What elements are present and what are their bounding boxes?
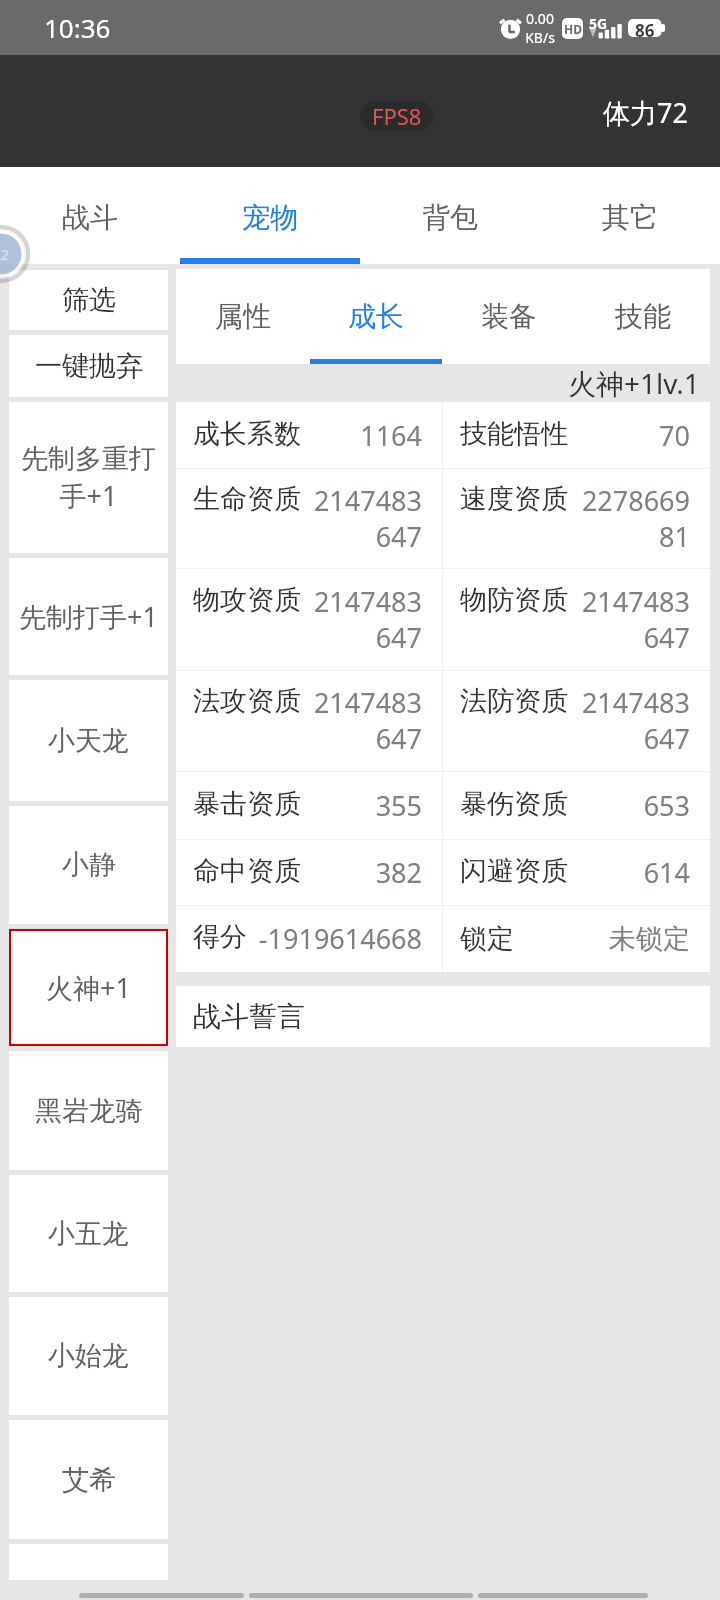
staticText: 成长 — [348, 299, 404, 334]
staticText: 小天龙 — [48, 724, 129, 758]
staticText: 成长系数 — [193, 417, 301, 451]
button[interactable]: 小静 — [9, 806, 168, 924]
staticText: 锁定 — [460, 922, 514, 956]
staticText: 装备 — [481, 299, 537, 334]
staticText: 先制多重打手+1 — [11, 442, 166, 514]
staticText: 闪避资质 — [460, 854, 568, 888]
staticText: 5G — [589, 14, 608, 33]
staticText: 86 — [635, 19, 655, 37]
button[interactable]: Back — [79, 1593, 244, 1598]
button[interactable]: 小五龙 — [9, 1175, 168, 1292]
button[interactable]: 技能 — [576, 269, 710, 364]
button[interactable]: 其它 — [540, 167, 720, 264]
staticText: 小五龙 — [48, 1217, 129, 1251]
button[interactable]: 背包 — [360, 167, 540, 264]
staticText: 技能 — [615, 299, 671, 334]
button[interactable]: 宠物 — [180, 167, 360, 264]
staticText: 2147483647 — [301, 684, 422, 757]
staticText: 其它 — [602, 200, 658, 235]
button[interactable]: 筛选 — [9, 270, 168, 330]
button[interactable]: Floating assistant — [0, 225, 31, 283]
staticText: 2147483647 — [568, 684, 690, 757]
button[interactable]: 黑岩龙骑 — [9, 1051, 168, 1170]
staticText: 227866981 — [568, 482, 690, 555]
staticText: -1919614668 — [247, 920, 422, 957]
staticText: 暴击资质 — [193, 787, 301, 821]
button[interactable]: 先制打手+1 — [9, 558, 168, 675]
staticText: 战斗 — [62, 200, 118, 235]
button[interactable]: 一键抛弃 — [9, 335, 168, 397]
staticText: 未锁定 — [514, 922, 690, 956]
staticText: 70 — [568, 417, 690, 454]
staticText: 背包 — [422, 200, 478, 235]
staticText: 命中资质 — [193, 854, 301, 888]
staticText: 生命资质 — [193, 482, 301, 516]
staticText: 2147483647 — [301, 583, 422, 656]
button[interactable]: 战斗誓言 — [176, 986, 710, 1047]
button[interactable]: 火神+1 — [9, 929, 168, 1046]
staticText: 一键抛弃 — [35, 349, 143, 383]
staticText: HD — [564, 21, 582, 37]
staticText: 先制打手+1 — [19, 598, 158, 635]
staticText: 10:36 — [44, 10, 111, 45]
staticText: 法防资质 — [460, 684, 568, 718]
staticText: 暴伤资质 — [460, 787, 568, 821]
button[interactable]: 装备 — [442, 269, 576, 364]
staticText: 0.00 — [526, 9, 554, 28]
staticText: 法攻资质 — [193, 684, 301, 718]
staticText: 1164 — [301, 417, 422, 454]
button[interactable]: 属性 — [176, 269, 309, 364]
staticText: 小始龙 — [48, 1339, 129, 1373]
staticText: 火神+1 — [46, 969, 131, 1006]
staticText: FPS8 — [372, 101, 422, 131]
staticText: 653 — [568, 787, 690, 824]
staticText: 火神+1lv.1 — [568, 364, 700, 402]
button[interactable]: FPS8 — [360, 101, 434, 131]
staticText: 筛选 — [62, 283, 116, 317]
staticText: 614 — [568, 854, 690, 891]
staticText: 382 — [301, 854, 422, 891]
staticText: 技能悟性 — [460, 417, 568, 451]
button[interactable]: 小始龙 — [9, 1297, 168, 1415]
staticText: 属性 — [215, 299, 271, 334]
staticText: 小静 — [62, 848, 116, 882]
staticText: 物防资质 — [460, 583, 568, 617]
staticText: 2147483647 — [568, 583, 690, 656]
button[interactable]: 小天龙 — [9, 680, 168, 801]
staticText: KB/s — [525, 28, 555, 47]
button[interactable]: 艾希 — [9, 1420, 168, 1539]
button[interactable]: 成长 — [309, 269, 442, 364]
staticText: 2147483647 — [301, 482, 422, 555]
staticText: 宠物 — [242, 200, 298, 235]
staticText: 艾希 — [62, 1463, 116, 1497]
staticText: 22 — [0, 245, 10, 264]
staticText: 体力72 — [603, 94, 688, 131]
staticText: 355 — [301, 787, 422, 824]
button[interactable]: 先制多重打手+1 — [9, 402, 168, 553]
button[interactable]: Recents — [478, 1593, 648, 1598]
staticText: 物攻资质 — [193, 583, 301, 617]
staticText: 得分 — [193, 920, 247, 954]
staticText: 战斗誓言 — [193, 999, 305, 1034]
staticText: 速度资质 — [460, 482, 568, 516]
staticText: 黑岩龙骑 — [35, 1094, 143, 1128]
button[interactable]: 战斗 — [0, 167, 180, 264]
